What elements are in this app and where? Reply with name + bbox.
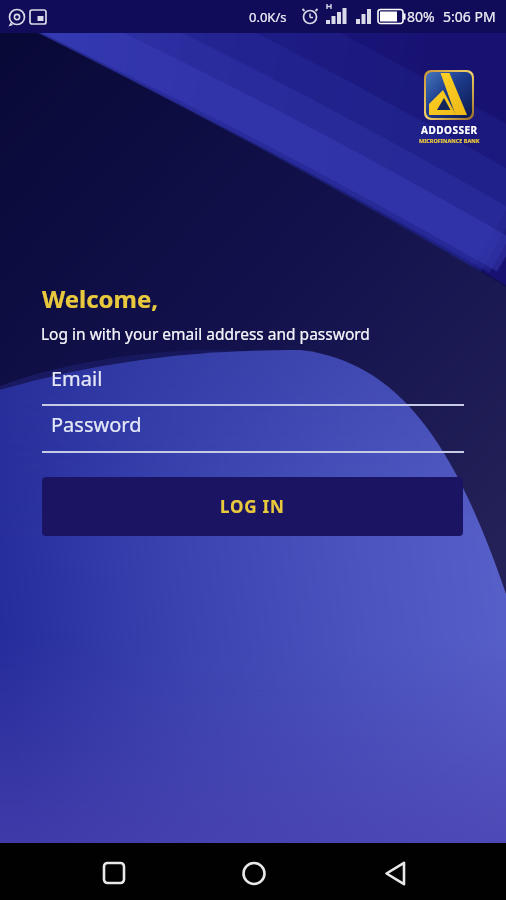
staticText: Welcome,: [42, 282, 159, 315]
staticText: MICROFINANCE BANK: [419, 137, 480, 144]
staticText: 5:06 PM: [443, 7, 496, 26]
staticText: Email: [51, 365, 103, 392]
staticText: Log in with your email address and passw…: [41, 323, 370, 344]
staticText: 0.0K/s: [249, 8, 287, 26]
staticText: ADDOSSER: [421, 123, 478, 137]
button[interactable]: [337, 843, 506, 900]
staticText: LOG IN: [220, 495, 285, 518]
staticText: Password: [51, 411, 142, 438]
button[interactable]: LOG IN: [42, 477, 463, 536]
button[interactable]: [0, 843, 168, 900]
staticText: 80%: [407, 7, 435, 26]
button[interactable]: [168, 843, 337, 900]
